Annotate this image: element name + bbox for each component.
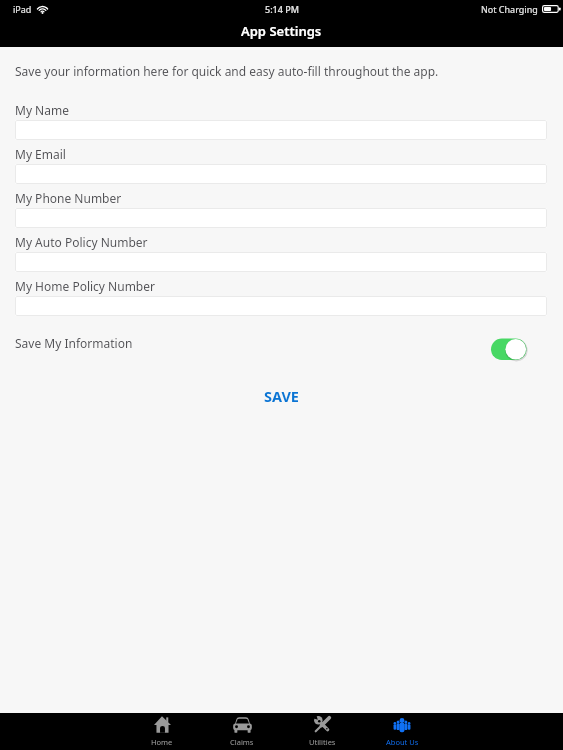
staticText: Save My Information [15, 335, 133, 351]
staticText: About Us [386, 737, 419, 747]
staticText: iPad [13, 3, 32, 15]
button[interactable]: Home [122, 713, 202, 750]
staticText: Utilities [309, 737, 336, 747]
staticText: My Home Policy Number [15, 278, 155, 294]
button[interactable]: SAVE [240, 381, 323, 411]
button[interactable]: My Home Policy Number [15, 296, 547, 316]
button[interactable]: Claims [202, 713, 282, 750]
button[interactable]: My Name [15, 120, 547, 140]
staticText: App Settings [241, 22, 322, 40]
staticText: SAVE [264, 386, 299, 406]
button[interactable]: Save My Information toggle [491, 338, 528, 361]
staticText: My Phone Number [15, 190, 122, 206]
staticText: Not Charging [481, 3, 538, 15]
staticText: My Auto Policy Number [15, 234, 148, 250]
button[interactable]: My Phone Number [15, 208, 547, 228]
staticText: My Email [15, 146, 66, 162]
button[interactable]: My Auto Policy Number [15, 252, 547, 272]
button[interactable]: Utilities [282, 713, 362, 750]
staticText: Save your information here for quick and… [15, 63, 439, 79]
staticText: Claims [230, 737, 254, 747]
button[interactable]: My Email [15, 164, 547, 184]
staticText: Home [151, 737, 173, 747]
staticText: My Name [15, 102, 69, 118]
staticText: 5:14 PM [265, 3, 299, 15]
button[interactable]: About Us [362, 713, 442, 750]
